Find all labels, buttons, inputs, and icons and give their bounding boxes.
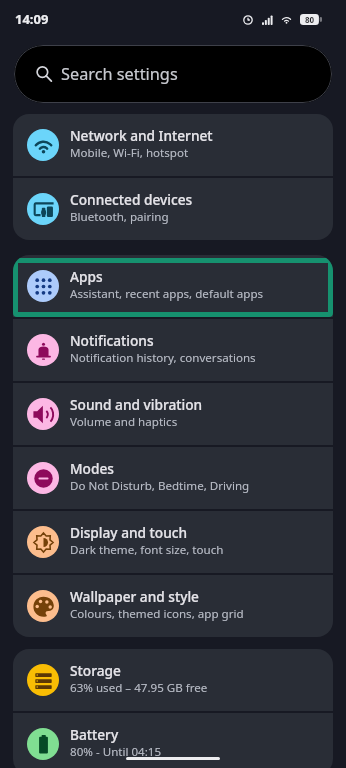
staticText: Storage (70, 661, 121, 680)
button[interactable]: Search settings (14, 45, 332, 103)
staticText: Connected devices (70, 190, 193, 209)
button[interactable]: Battery (13, 713, 333, 768)
button[interactable]: Wallpaper and style (13, 575, 333, 637)
button[interactable]: Display and touch (13, 511, 333, 573)
button[interactable]: Network and Internet (13, 114, 333, 176)
staticText: Display and touch (70, 523, 188, 542)
staticText: Search settings (61, 63, 178, 85)
staticText: Notifications (70, 331, 154, 350)
staticText: Notification history, conversations (70, 350, 256, 366)
staticText: Apps (70, 267, 103, 286)
button[interactable]: Modes (13, 447, 333, 509)
staticText: Wallpaper and style (70, 587, 199, 606)
button[interactable]: Sound and vibration (13, 383, 333, 445)
staticText: 80 (300, 14, 319, 25)
button[interactable]: Notifications (13, 319, 333, 381)
staticText: 14:09 (15, 10, 49, 28)
staticText: Dark theme, font size, touch (70, 542, 224, 558)
button[interactable]: Apps (13, 255, 333, 317)
staticText: Volume and haptics (70, 414, 178, 430)
button[interactable]: Storage (13, 649, 333, 711)
staticText: Bluetooth, pairing (70, 209, 169, 225)
staticText: Battery (70, 725, 119, 744)
staticText: Modes (70, 459, 114, 478)
staticText: Network and Internet (70, 126, 213, 145)
staticText: Assistant, recent apps, default apps (70, 286, 264, 302)
staticText: Sound and vibration (70, 395, 203, 414)
staticText: 63% used – 47.95 GB free (70, 680, 208, 696)
staticText: Colours, themed icons, app grid (70, 606, 244, 622)
staticText: 80% - Until 04:15 (70, 744, 162, 760)
button[interactable]: Connected devices (13, 178, 333, 240)
staticText: Do Not Disturb, Bedtime, Driving (70, 478, 250, 494)
staticText: Mobile, Wi-Fi, hotspot (70, 145, 189, 161)
